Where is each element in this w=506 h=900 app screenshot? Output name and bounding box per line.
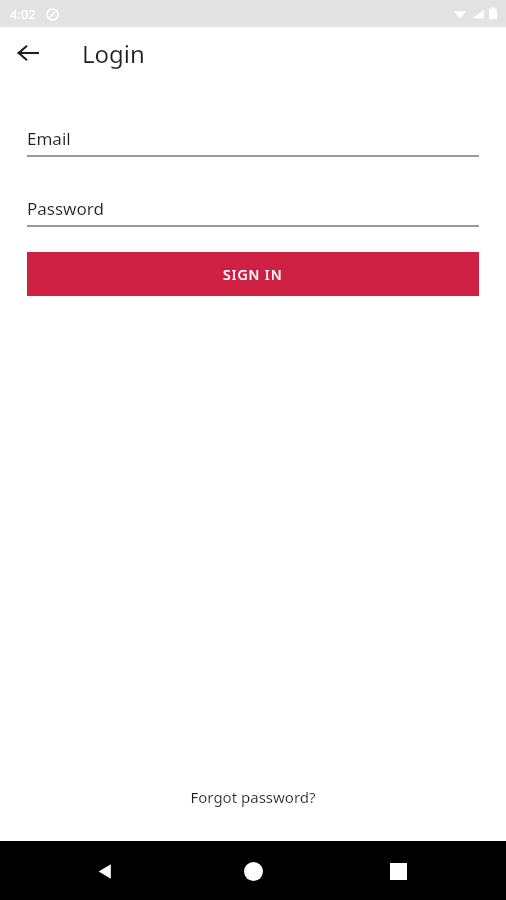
staticText: Password [27,197,104,220]
button[interactable]: Forgot password? [190,787,316,807]
staticText: SIGN IN [223,265,283,284]
button[interactable]: Back [8,33,48,73]
staticText: Login [82,37,145,70]
button[interactable]: SIGN IN [27,252,479,296]
staticText: 4:02 [10,5,36,23]
staticText: Forgot password? [190,787,316,807]
staticText: Email [27,127,71,150]
button[interactable]: Recent apps [374,847,422,895]
button[interactable]: Home [229,847,277,895]
button[interactable]: Email [27,127,479,157]
button[interactable]: Back [81,847,129,895]
button[interactable]: Password [27,197,479,227]
